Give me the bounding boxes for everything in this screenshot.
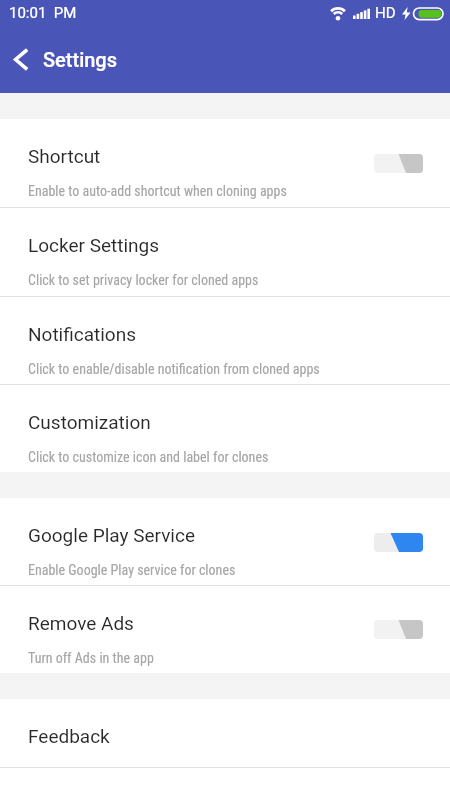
button[interactable]: Locker Settings bbox=[0, 208, 450, 297]
staticText: Enable Google Play service for clones bbox=[28, 562, 236, 578]
staticText: Notifications bbox=[28, 323, 137, 345]
button[interactable]: Customization bbox=[0, 385, 450, 472]
staticText: Turn off Ads in the app bbox=[28, 650, 154, 666]
button[interactable] bbox=[374, 154, 423, 173]
button[interactable] bbox=[374, 620, 423, 639]
button[interactable]: Feedback bbox=[0, 699, 450, 768]
staticText: Shortcut bbox=[28, 145, 101, 167]
button[interactable]: Remove Ads bbox=[0, 586, 450, 673]
staticText: Enable to auto-add shortcut when cloning… bbox=[28, 183, 287, 199]
button[interactable] bbox=[374, 533, 423, 552]
staticText: Customization bbox=[28, 411, 151, 433]
staticText: Google Play Service bbox=[28, 524, 196, 546]
staticText: Click to enable/disable notification fro… bbox=[28, 361, 320, 377]
staticText: Settings bbox=[43, 48, 118, 71]
button[interactable] bbox=[0, 31, 44, 93]
staticText: Click to customize icon and label for cl… bbox=[28, 449, 269, 465]
button[interactable]: Notifications bbox=[0, 297, 450, 385]
staticText: Locker Settings bbox=[28, 234, 160, 256]
staticText: HD bbox=[375, 4, 396, 22]
staticText: Click to set privacy locker for cloned a… bbox=[28, 272, 259, 288]
staticText: Feedback bbox=[28, 725, 110, 747]
staticText: 10:01 PM bbox=[9, 4, 77, 22]
button[interactable]: Shortcut bbox=[0, 119, 450, 208]
staticText: Remove Ads bbox=[28, 612, 134, 634]
button[interactable]: Google Play Service bbox=[0, 498, 450, 586]
